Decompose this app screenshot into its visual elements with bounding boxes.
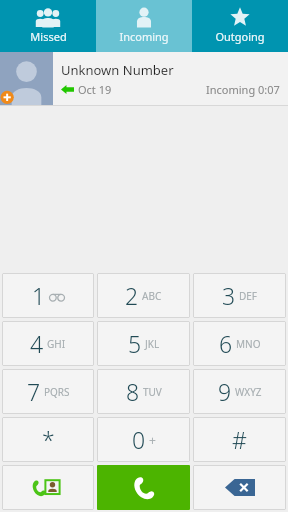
- staticText: 2: [125, 280, 139, 311]
- button[interactable]: Call: [97, 465, 190, 510]
- button[interactable]: 9: [193, 369, 286, 414]
- staticText: DEF: [239, 289, 258, 303]
- staticText: Missed: [30, 29, 67, 44]
- staticText: GHI: [47, 337, 66, 351]
- button[interactable]: Outgoing: [192, 0, 288, 52]
- staticText: +: [149, 432, 156, 448]
- button[interactable]: Unknown Number: [0, 52, 288, 105]
- button[interactable]: Backspace: [193, 465, 286, 510]
- staticText: Incoming: [119, 29, 169, 44]
- button[interactable]: 1: [2, 273, 94, 318]
- button[interactable]: 3: [193, 273, 286, 318]
- staticText: Oct 19: [78, 82, 112, 97]
- staticText: Incoming 0:07: [206, 82, 280, 97]
- staticText: 4: [30, 328, 44, 359]
- staticText: 3: [222, 280, 236, 311]
- staticText: 1: [32, 280, 46, 311]
- button[interactable]: Add to contacts: [2, 465, 94, 510]
- staticText: 9: [218, 376, 232, 407]
- staticText: 0: [132, 424, 146, 455]
- button[interactable]: Incoming: [96, 0, 192, 52]
- staticText: JKL: [145, 337, 160, 351]
- button[interactable]: *: [2, 417, 94, 462]
- button[interactable]: 0: [97, 417, 190, 462]
- staticText: Outgoing: [215, 29, 265, 44]
- button[interactable]: 6: [193, 321, 286, 366]
- button[interactable]: 7: [2, 369, 94, 414]
- staticText: *: [42, 424, 55, 455]
- button[interactable]: 8: [97, 369, 190, 414]
- staticText: PQRS: [44, 385, 70, 399]
- staticText: Unknown Number: [61, 61, 174, 79]
- staticText: TUV: [143, 385, 162, 399]
- staticText: 6: [219, 328, 233, 359]
- staticText: ABC: [142, 289, 162, 303]
- button[interactable]: 5: [97, 321, 190, 366]
- button[interactable]: #: [193, 417, 286, 462]
- button[interactable]: Missed: [0, 0, 96, 52]
- staticText: 5: [128, 328, 142, 359]
- staticText: MNO: [236, 337, 261, 351]
- staticText: 7: [27, 376, 41, 407]
- staticText: #: [232, 424, 247, 455]
- button[interactable]: 2: [97, 273, 190, 318]
- button[interactable]: 4: [2, 321, 94, 366]
- staticText: 8: [126, 376, 140, 407]
- staticText: WXYZ: [235, 385, 262, 399]
